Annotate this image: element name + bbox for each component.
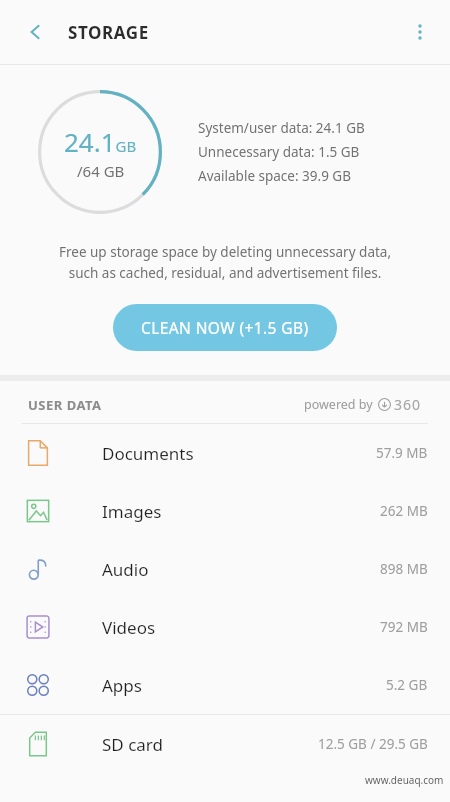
staticText: STORAGE (68, 21, 149, 44)
staticText: 57.9 MB (376, 444, 428, 462)
button[interactable]: Apps (0, 656, 450, 714)
button[interactable]: Images (0, 482, 450, 540)
staticText: /64 GB (77, 161, 125, 181)
staticText: Available space: 39.9 GB (198, 167, 351, 185)
staticText: 360 (394, 395, 422, 414)
staticText: Videos (102, 616, 156, 639)
button[interactable]: Videos (0, 598, 450, 656)
staticText: SD card (102, 733, 163, 756)
button[interactable]: Audio (0, 540, 450, 598)
staticText: www.deuaq.com (365, 773, 444, 787)
button[interactable]: Back (14, 10, 58, 54)
staticText: CLEAN NOW (+1.5 GB) (141, 317, 309, 338)
button[interactable]: More options (398, 10, 442, 54)
staticText: 262 MB (380, 502, 428, 520)
staticText: powered by (304, 396, 373, 413)
staticText: 5.2 GB (386, 676, 428, 694)
button[interactable]: Documents (0, 424, 450, 482)
staticText: Audio (102, 558, 149, 581)
staticText: Free up storage space by deleting unnece… (18, 243, 432, 282)
button[interactable]: SD card (0, 715, 450, 773)
staticText: 12.5 GB / 29.5 GB (318, 735, 428, 753)
staticText: Apps (102, 674, 142, 697)
staticText: Images (102, 500, 162, 523)
staticText: Documents (102, 442, 194, 465)
staticText: 792 MB (380, 618, 428, 636)
staticText: Unnecessary data: 1.5 GB (198, 143, 360, 161)
staticText: 24.1GB (64, 124, 137, 159)
staticText: USER DATA (28, 396, 102, 414)
staticText: 898 MB (380, 560, 428, 578)
staticText: System/user data: 24.1 GB (198, 119, 365, 137)
button[interactable]: CLEAN NOW (+1.5 GB) (113, 304, 337, 351)
